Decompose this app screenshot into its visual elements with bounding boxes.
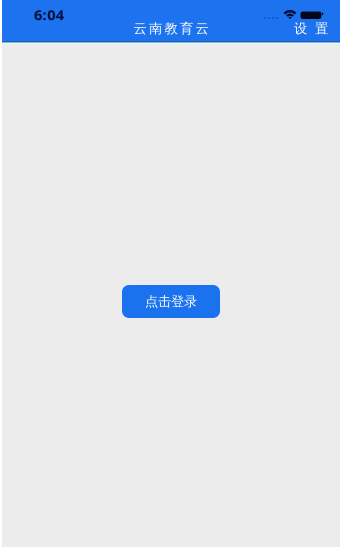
staticText: 6:04 (34, 5, 64, 24)
staticText: 点击登录 (145, 293, 197, 310)
button[interactable]: 点击登录 (122, 285, 220, 318)
staticText: 云南教育云 (133, 20, 208, 37)
staticText: 设置 (294, 20, 328, 37)
button[interactable]: 设置 (291, 18, 331, 39)
